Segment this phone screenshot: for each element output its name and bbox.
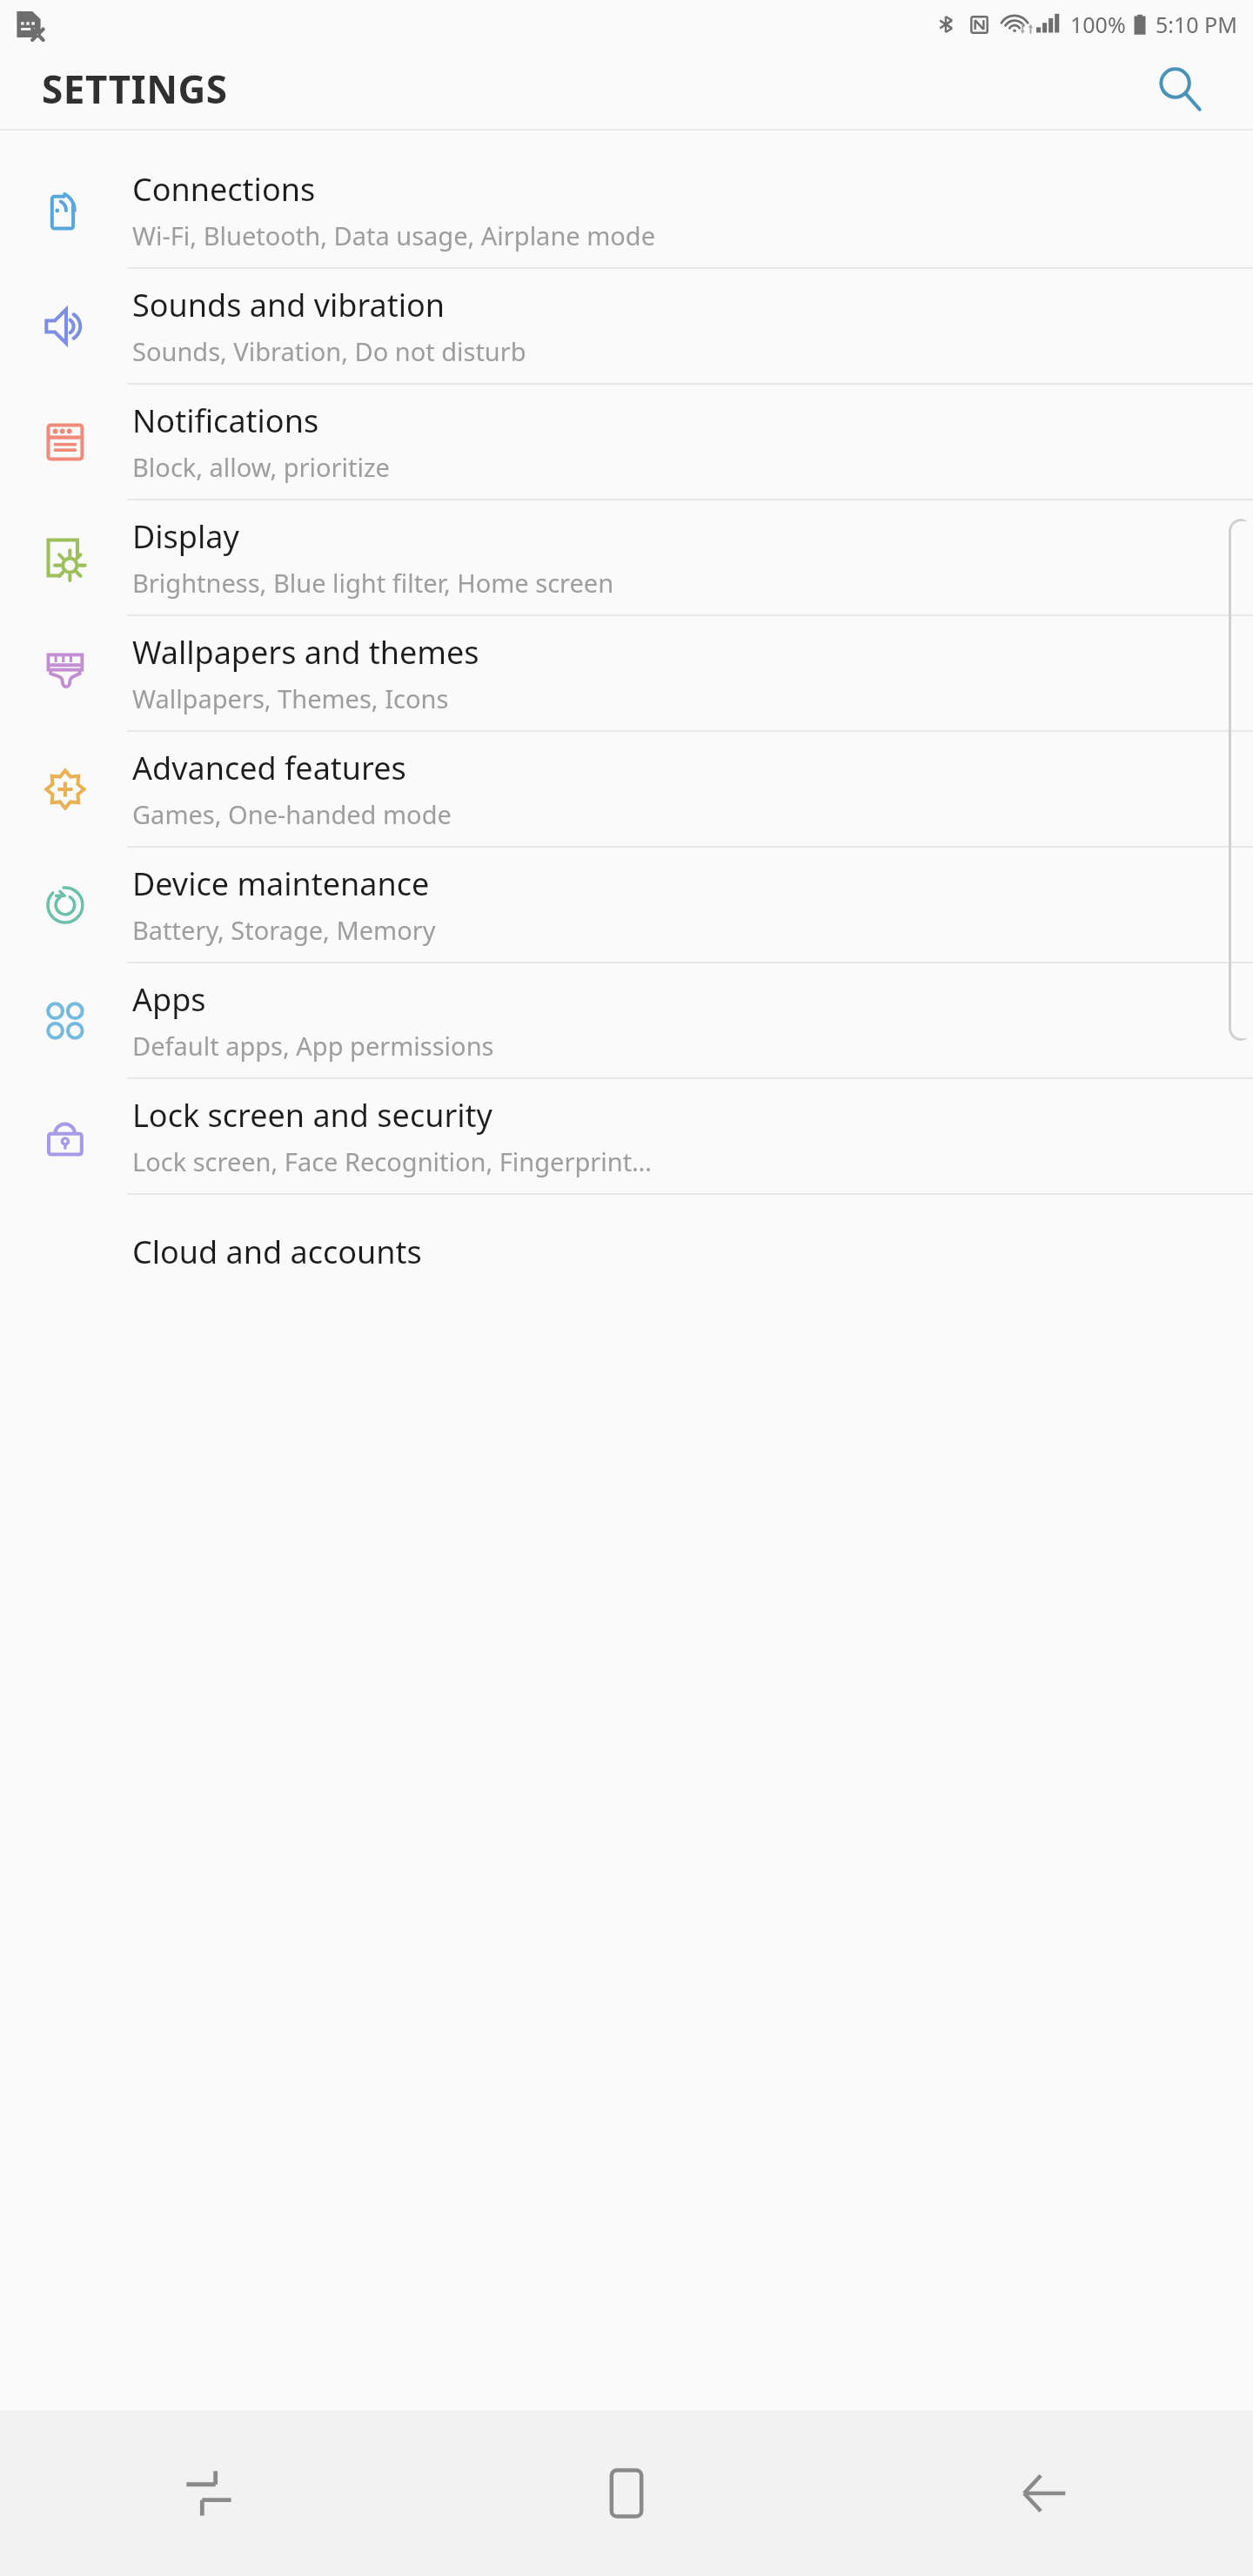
staticText: Default apps, App permissions bbox=[132, 1029, 494, 1063]
staticText: Lock screen, Face Recognition, Fingerpri… bbox=[132, 1144, 653, 1178]
staticText: 100% bbox=[1070, 10, 1126, 39]
button[interactable]: Home bbox=[418, 2411, 835, 2576]
staticText: Sounds, Vibration, Do not disturb bbox=[132, 334, 526, 368]
staticText: Games, One-handed mode bbox=[132, 797, 452, 831]
button[interactable]: Connections bbox=[0, 153, 1253, 269]
button[interactable]: Recents bbox=[0, 2411, 418, 2576]
staticText: Display bbox=[132, 515, 239, 558]
button[interactable]: Device maintenance bbox=[0, 848, 1253, 963]
staticText: Notifications bbox=[132, 399, 319, 442]
staticText: Advanced features bbox=[132, 747, 406, 789]
staticText: Lock screen and security bbox=[132, 1094, 492, 1137]
staticText: Wi-Fi, Bluetooth, Data usage, Airplane m… bbox=[132, 218, 656, 252]
staticText: Sounds and vibration bbox=[132, 284, 446, 326]
staticText: Cloud and accounts bbox=[132, 1231, 422, 1273]
staticText: 5:10 PM bbox=[1156, 10, 1237, 39]
button[interactable]: Sounds and vibration bbox=[0, 269, 1253, 385]
button[interactable]: Display bbox=[0, 500, 1253, 616]
staticText: Wallpapers and themes bbox=[132, 631, 479, 674]
button[interactable]: Notifications bbox=[0, 385, 1253, 500]
staticText: Device maintenance bbox=[132, 862, 430, 905]
button[interactable]: Back bbox=[835, 2411, 1253, 2576]
staticText: SETTINGS bbox=[42, 63, 228, 115]
button[interactable]: Cloud and accounts bbox=[0, 1195, 1253, 1309]
button[interactable]: Apps bbox=[0, 963, 1253, 1079]
button[interactable]: Lock screen and security bbox=[0, 1079, 1253, 1195]
staticText: Brightness, Blue light filter, Home scre… bbox=[132, 566, 614, 600]
button[interactable]: Search bbox=[1138, 48, 1222, 129]
staticText: Apps bbox=[132, 978, 206, 1021]
staticText: Connections bbox=[132, 168, 316, 211]
staticText: Wallpapers, Themes, Icons bbox=[132, 681, 449, 715]
staticText: Battery, Storage, Memory bbox=[132, 913, 436, 947]
staticText: Block, allow, prioritize bbox=[132, 450, 390, 484]
button[interactable]: Wallpapers and themes bbox=[0, 616, 1253, 732]
button[interactable]: Advanced features bbox=[0, 732, 1253, 848]
